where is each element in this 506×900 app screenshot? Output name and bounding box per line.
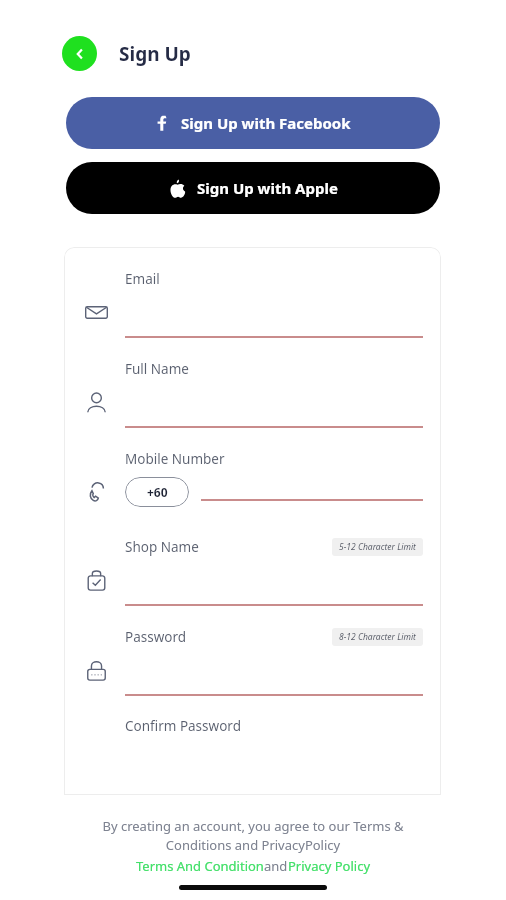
- staticText: Sign Up with Facebook: [181, 113, 351, 133]
- button[interactable]: Sign Up with Apple: [66, 162, 440, 214]
- button[interactable]: Password: [64, 619, 441, 709]
- button[interactable]: Email: [64, 261, 441, 351]
- button[interactable]: Sign Up with Facebook: [66, 97, 440, 149]
- staticText: Sign Up with Apple: [197, 178, 338, 198]
- staticText: +60: [147, 484, 168, 500]
- button[interactable]: Privacy Policy: [288, 857, 371, 875]
- staticText: 5-12 Character Limit: [339, 541, 416, 553]
- staticText: Shop Name: [125, 538, 199, 556]
- staticText: Confirm Password: [125, 717, 241, 735]
- button[interactable]: Terms And Condition: [136, 857, 264, 875]
- staticText: and: [264, 857, 288, 875]
- button[interactable]: Back: [62, 36, 97, 71]
- staticText: By creating an account, you agree to our…: [0, 817, 506, 854]
- button[interactable]: Shop Name: [64, 529, 441, 619]
- staticText: Full Name: [125, 360, 189, 378]
- button[interactable]: Full Name: [64, 351, 441, 441]
- staticText: Mobile Number: [125, 450, 225, 468]
- staticText: 8-12 Character Limit: [339, 631, 416, 643]
- button[interactable]: Mobile Number: [64, 441, 441, 529]
- staticText: Email: [125, 270, 160, 288]
- staticText: Password: [125, 628, 187, 646]
- staticText: Sign Up: [119, 41, 191, 67]
